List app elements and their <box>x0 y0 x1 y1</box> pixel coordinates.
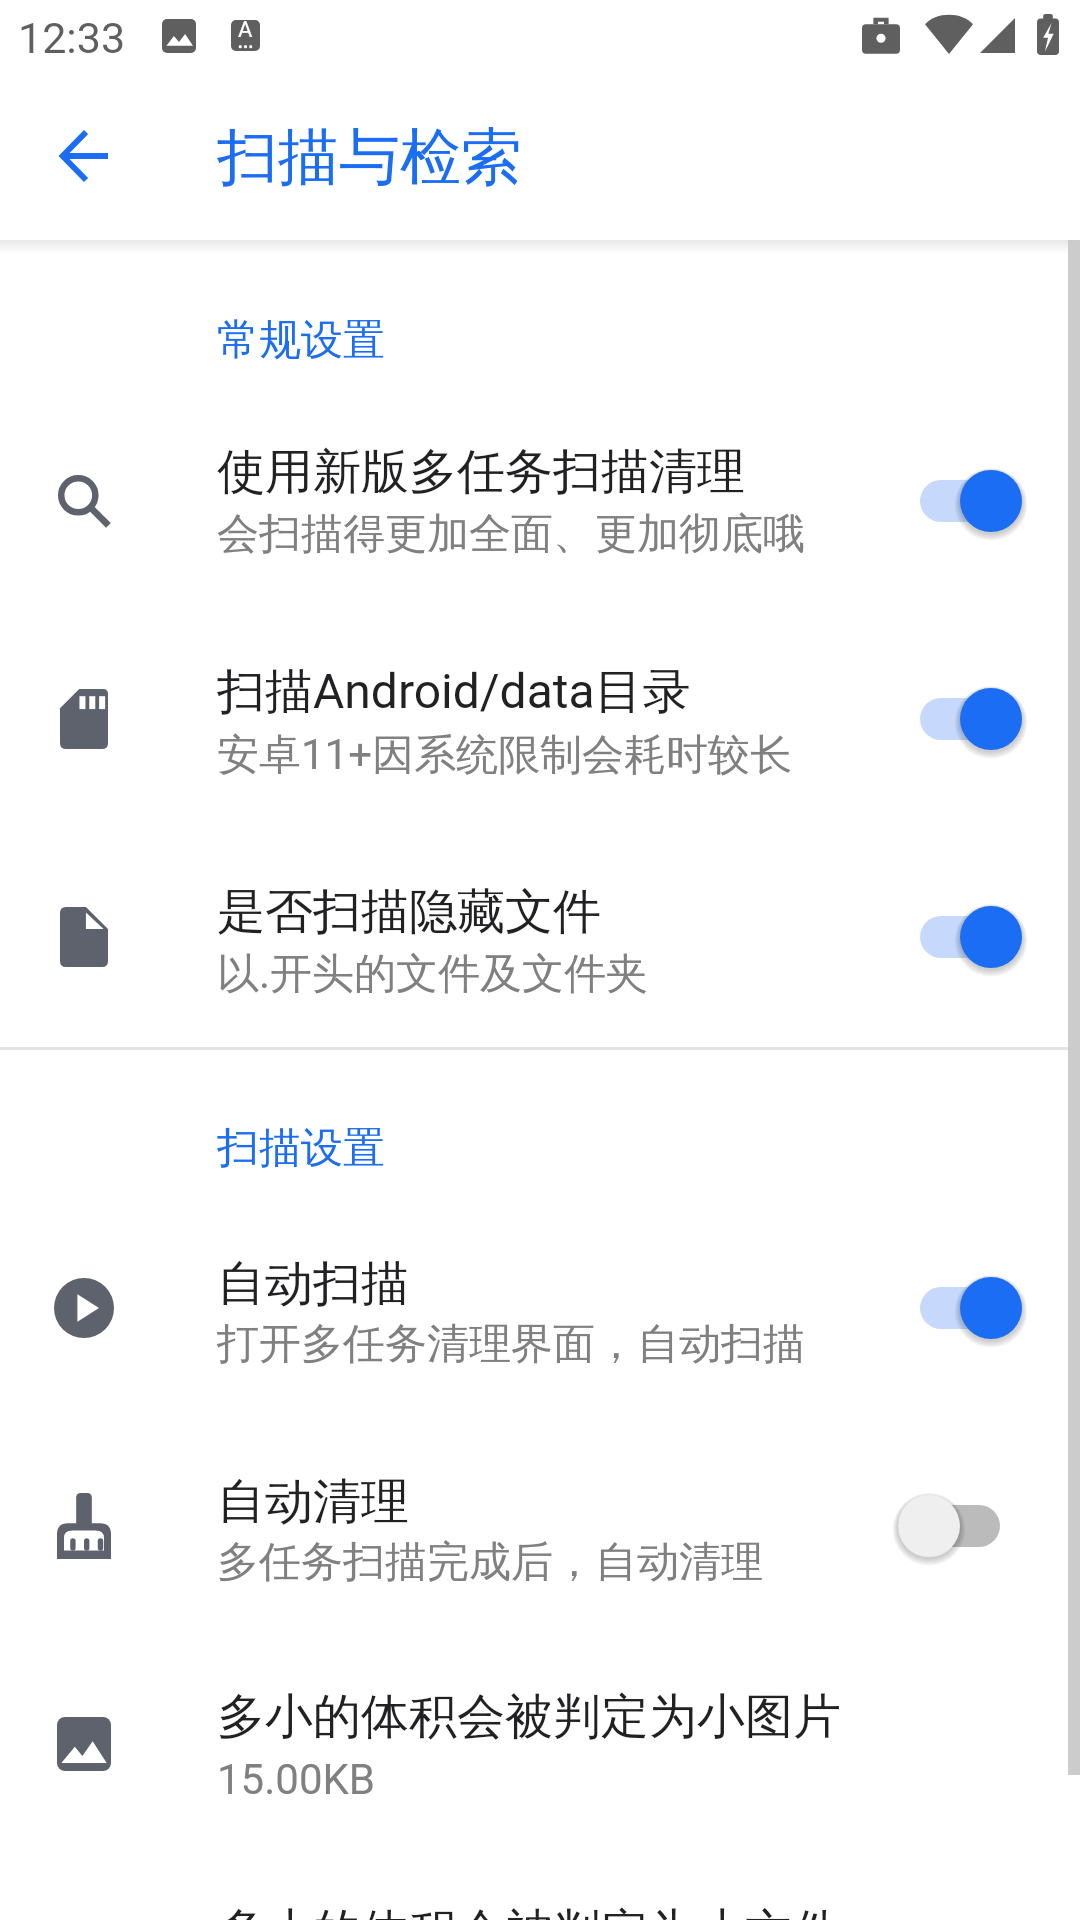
staticText: 安卓11+因系统限制会耗时较长 <box>217 729 917 782</box>
button[interactable]: Switch on <box>898 669 1022 769</box>
button[interactable]: 自动清理 <box>0 1417 1080 1635</box>
staticText: 多小的体积会被判定为小文件 <box>217 1902 917 1920</box>
button[interactable]: Back <box>36 108 132 204</box>
staticText: 打开多任务清理界面，自动扫描 <box>217 1318 917 1371</box>
staticText: 多任务扫描完成后，自动清理 <box>217 1536 917 1589</box>
staticText: 常规设置 <box>217 314 385 367</box>
button[interactable]: 扫描Android/data目录 <box>0 610 1080 828</box>
staticText: 是否扫描隐藏文件 <box>217 882 917 942</box>
button[interactable]: 使用新版多任务扫描清理 <box>0 392 1080 610</box>
staticText: 12:33 <box>18 13 126 63</box>
staticText: 扫描与检索 <box>217 119 522 196</box>
button[interactable]: 自动扫描 <box>0 1199 1080 1417</box>
staticText: 以.开头的文件及文件夹 <box>217 948 917 1001</box>
staticText: 使用新版多任务扫描清理 <box>217 442 917 502</box>
button[interactable]: Switch on <box>898 887 1022 987</box>
button[interactable]: Switch on <box>898 451 1022 551</box>
staticText: 自动清理 <box>217 1472 917 1532</box>
button[interactable]: 多小的体积会被判定为小文件 <box>0 1853 1080 1920</box>
staticText: 扫描设置 <box>217 1122 385 1175</box>
staticText: 会扫描得更加全面、更加彻底哦 <box>217 508 917 561</box>
staticText: 15.00KB <box>217 1755 917 1804</box>
staticText: A <box>238 17 253 43</box>
staticText: 自动扫描 <box>217 1254 917 1314</box>
button[interactable]: 是否扫描隐藏文件 <box>0 828 1080 1046</box>
staticText: 多小的体积会被判定为小图片 <box>217 1687 917 1747</box>
staticText: 扫描Android/data目录 <box>217 662 917 722</box>
button[interactable]: Switch on <box>898 1258 1022 1358</box>
button[interactable]: Switch off <box>898 1476 1022 1576</box>
button[interactable]: 多小的体积会被判定为小图片 <box>0 1635 1080 1853</box>
